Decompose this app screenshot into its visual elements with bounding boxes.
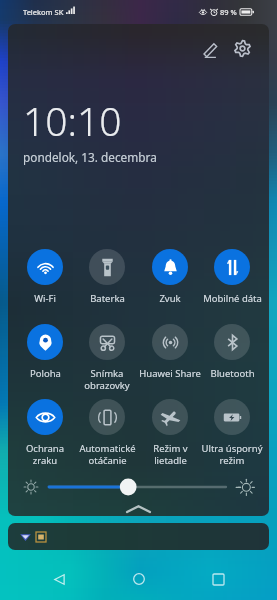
- button[interactable]: Ultra úsporný režim: [201, 399, 263, 467]
- button[interactable]: Poloha: [14, 324, 76, 380]
- staticText: Ochrana zraku: [14, 442, 76, 467]
- staticText: Zvuk: [159, 292, 181, 305]
- button[interactable]: [8, 523, 269, 550]
- staticText: Wi-Fi: [34, 292, 56, 305]
- staticText: 89 %: [220, 7, 237, 17]
- button[interactable]: Home: [119, 559, 159, 599]
- button[interactable]: Ochrana zraku: [14, 399, 76, 467]
- button[interactable]: Zvuk: [139, 249, 201, 305]
- button[interactable]: Edit quick settings: [195, 34, 225, 64]
- staticText: Poloha: [30, 367, 61, 380]
- button[interactable]: Režim v lietadle: [139, 399, 201, 467]
- staticText: Ultra úsporný režim: [201, 442, 263, 467]
- button[interactable]: Snímka obrazovky: [76, 324, 138, 392]
- staticText: Huawei Share: [139, 367, 201, 380]
- button[interactable]: Recent apps: [198, 559, 238, 599]
- button[interactable]: Automatické otáčanie: [76, 399, 138, 467]
- staticText: Snímka obrazovky: [84, 367, 130, 392]
- button[interactable]: Baterka: [76, 249, 138, 305]
- button[interactable]: Mobilné dáta: [201, 249, 263, 305]
- button[interactable]: Settings: [227, 33, 257, 63]
- staticText: Baterka: [90, 292, 125, 305]
- staticText: Bluetooth: [210, 367, 255, 380]
- staticText: 10:10: [23, 94, 122, 147]
- staticText: Automatické otáčanie: [79, 442, 136, 467]
- staticText: Režim v lietadle: [153, 442, 188, 467]
- staticText: Mobilné dáta: [203, 292, 262, 305]
- staticText: pondelok, 13. decembra: [23, 149, 157, 165]
- staticText: Telekom SK: [23, 7, 64, 17]
- button[interactable]: Bluetooth: [201, 324, 263, 380]
- button[interactable]: Back: [39, 559, 79, 599]
- button[interactable]: Wi-Fi: [14, 249, 76, 305]
- button[interactable]: Huawei Share: [139, 324, 201, 380]
